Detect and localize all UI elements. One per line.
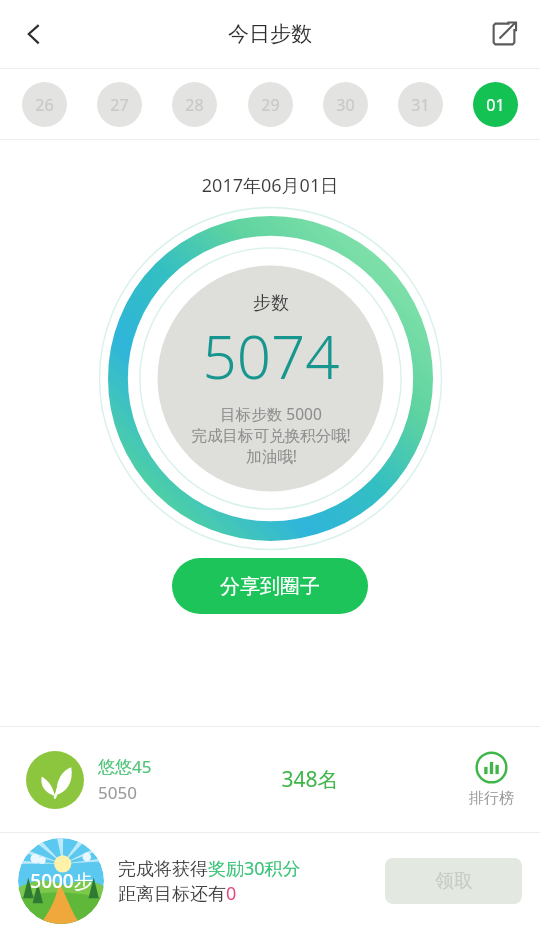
- button[interactable]: 26: [22, 82, 67, 127]
- staticText: 2017年06月01日: [0, 173, 540, 198]
- staticText: 29: [261, 94, 280, 116]
- staticText: 完成目标可兑换积分哦!: [191, 424, 351, 445]
- staticText: 01: [486, 94, 505, 116]
- button[interactable]: 29: [248, 82, 293, 127]
- staticText: 悠悠45: [98, 755, 152, 778]
- button[interactable]: 30: [323, 82, 368, 127]
- button[interactable]: Share: [476, 6, 532, 62]
- staticText: 完成将获得奖励30积分: [118, 856, 301, 881]
- staticText: 加油哦!: [246, 445, 297, 466]
- staticText: 5074: [202, 315, 340, 397]
- staticText: 348名: [281, 765, 339, 794]
- button[interactable]: 28: [172, 82, 217, 127]
- button[interactable]: 01: [473, 82, 518, 127]
- button[interactable]: 31: [398, 82, 443, 127]
- staticText: 目标步数 5000: [220, 403, 322, 424]
- staticText: 领取: [435, 869, 473, 893]
- button[interactable]: 领取: [385, 858, 522, 904]
- staticText: 26: [35, 94, 54, 116]
- button[interactable]: 27: [97, 82, 142, 127]
- staticText: 步数: [253, 292, 289, 315]
- button[interactable]: 悠悠45: [0, 727, 540, 832]
- staticText: 5000步: [30, 868, 93, 894]
- staticText: 31: [411, 94, 430, 116]
- staticText: 30: [336, 94, 355, 116]
- button[interactable]: 分享到圈子: [172, 558, 368, 614]
- staticText: 分享到圈子: [220, 574, 320, 599]
- staticText: 距离目标还有0: [118, 881, 237, 906]
- staticText: 28: [185, 94, 204, 116]
- button[interactable]: Back: [6, 6, 62, 62]
- staticText: 27: [110, 94, 129, 116]
- staticText: 5050: [98, 781, 137, 804]
- staticText: 排行榜: [469, 789, 514, 808]
- staticText: 今日步数: [228, 21, 312, 47]
